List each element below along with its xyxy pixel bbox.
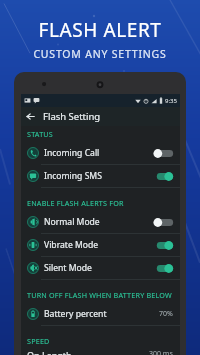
staticText: SPEED <box>27 336 50 346</box>
button[interactable]: Vibrate Mode <box>21 234 180 256</box>
button[interactable]: Incoming Call <box>21 142 180 164</box>
staticText: 300 ms <box>149 349 173 355</box>
staticText: ENABLE FLASH ALERTS FOR <box>27 198 124 208</box>
staticText: FLASH ALERT <box>0 17 200 43</box>
button[interactable]: Battery percent <box>21 303 180 325</box>
button[interactable]: Toggle off <box>153 217 174 228</box>
button[interactable]: On Length <box>21 349 180 355</box>
button[interactable]: Toggle on <box>153 171 174 182</box>
button[interactable]: Toggle on <box>153 240 174 251</box>
staticText: TURN OFF FLASH WHEN BATTERY BELOW <box>27 290 172 300</box>
button[interactable]: Back <box>21 107 40 126</box>
staticText: Incoming SMS <box>44 170 102 182</box>
staticText: Incoming Call <box>44 147 100 159</box>
button[interactable]: Silent Mode <box>21 257 180 279</box>
staticText: On Length <box>27 349 72 355</box>
staticText: STATUS <box>27 129 53 139</box>
staticText: 70% <box>159 309 173 319</box>
staticText: Vibrate Mode <box>44 239 99 251</box>
staticText: Flash Setting <box>43 110 101 123</box>
button[interactable]: Toggle on <box>153 263 174 274</box>
staticText: Silent Mode <box>44 262 92 274</box>
button[interactable]: Normal Mode <box>21 211 180 233</box>
staticText: 9:35 <box>165 97 177 105</box>
staticText: Battery percent <box>44 308 107 320</box>
button[interactable]: Incoming SMS <box>21 165 180 187</box>
staticText: Normal Mode <box>44 216 100 228</box>
staticText: CUSTOM ANY SETTINGS <box>0 47 200 61</box>
button[interactable]: Toggle off <box>153 148 174 159</box>
